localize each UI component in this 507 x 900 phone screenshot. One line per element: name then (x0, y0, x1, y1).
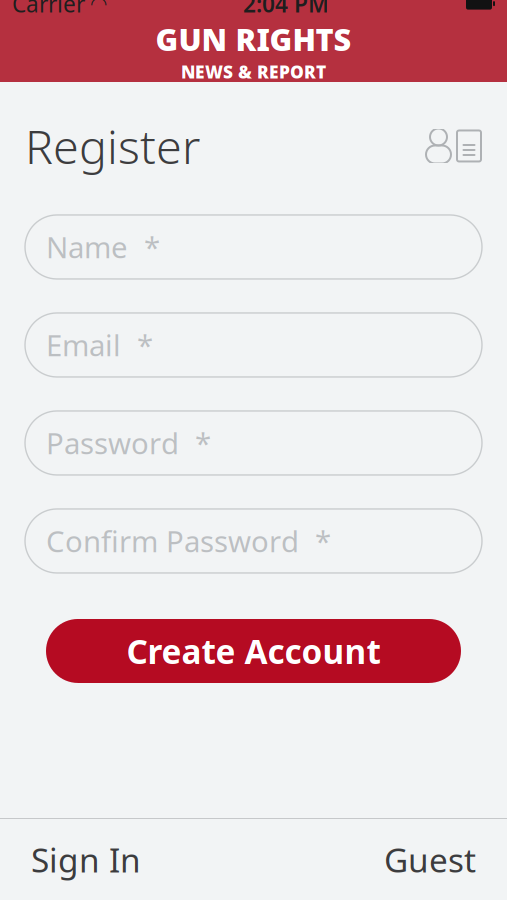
staticText: Guest (384, 837, 476, 882)
staticText: ◠ (91, 0, 106, 15)
staticText: Name * (46, 227, 160, 266)
staticText: GUN RIGHTS (155, 19, 351, 59)
staticText: Email * (46, 325, 153, 364)
button[interactable]: Guest (378, 825, 482, 894)
staticText: Confirm Password * (46, 521, 331, 560)
staticText: Password * (46, 423, 211, 462)
staticText: 2:04 PM (243, 0, 329, 19)
staticText: Register (25, 115, 200, 177)
staticText: Create Account (126, 629, 380, 673)
button[interactable]: Create Account (46, 619, 461, 683)
button[interactable]: Sign In (25, 825, 147, 894)
staticText: NEWS & REPORT (181, 60, 326, 83)
button[interactable]: Edit profile (425, 129, 482, 163)
staticText: Carrier (12, 0, 85, 19)
staticText: Sign In (31, 837, 141, 882)
